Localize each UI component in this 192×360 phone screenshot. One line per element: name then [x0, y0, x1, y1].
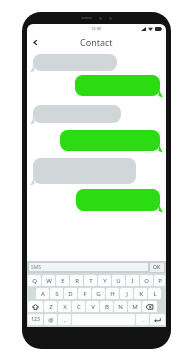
- button[interactable]: Sent message: [76, 189, 163, 211]
- button[interactable]: Received message: [30, 105, 121, 123]
- button[interactable]: D: [64, 288, 77, 299]
- button[interactable]: ,: [58, 314, 71, 325]
- staticText: SMS: [31, 264, 42, 271]
- button[interactable]: E: [56, 275, 69, 286]
- button[interactable]: .: [136, 314, 149, 325]
- button[interactable]: L: [148, 288, 161, 299]
- button[interactable]: P: [154, 275, 165, 286]
- button[interactable]: S: [50, 288, 63, 299]
- staticText: L: [153, 290, 157, 298]
- button[interactable]: OK: [150, 263, 164, 272]
- staticText: O: [144, 277, 149, 285]
- button[interactable]: U: [112, 275, 125, 286]
- button[interactable]: SMS: [29, 263, 148, 271]
- button[interactable]: O: [140, 275, 153, 286]
- button[interactable]: 123: [28, 314, 43, 325]
- staticText: C: [77, 303, 81, 311]
- button[interactable]: Received message: [30, 54, 117, 71]
- staticText: T: [89, 277, 93, 285]
- staticText: U: [116, 277, 121, 285]
- staticText: K: [139, 290, 143, 298]
- staticText: P: [158, 277, 162, 285]
- staticText: S: [55, 290, 59, 298]
- staticText: V: [91, 303, 95, 311]
- button[interactable]: X: [58, 301, 71, 312]
- staticText: .: [142, 316, 144, 324]
- staticText: Q: [32, 277, 37, 285]
- staticText: F: [83, 290, 87, 298]
- button[interactable]: T: [84, 275, 97, 286]
- staticText: G: [96, 290, 101, 298]
- staticText: R: [75, 277, 79, 285]
- button[interactable]: W: [42, 275, 55, 286]
- button[interactable]: A: [36, 288, 49, 299]
- staticText: E: [61, 277, 65, 285]
- staticText: M: [132, 303, 138, 311]
- staticText: X: [63, 303, 67, 311]
- staticText: Contact: [80, 36, 113, 48]
- button[interactable]: Sent message: [75, 75, 163, 96]
- staticText: Y: [103, 277, 107, 285]
- staticText: N: [118, 303, 123, 311]
- button[interactable]: I: [126, 275, 139, 286]
- staticText: H: [110, 290, 115, 298]
- staticText: B: [105, 303, 109, 311]
- button[interactable]: J: [120, 288, 133, 299]
- button[interactable]: @: [44, 314, 57, 325]
- staticText: W: [46, 277, 52, 285]
- staticText: ,: [64, 316, 66, 324]
- button[interactable]: Backspace: [142, 301, 157, 312]
- button[interactable]: Enter: [150, 314, 165, 325]
- button[interactable]: R: [70, 275, 83, 286]
- button[interactable]: C: [72, 301, 85, 312]
- button[interactable]: Shift: [28, 301, 43, 312]
- staticText: Z: [49, 303, 53, 311]
- button[interactable]: G: [92, 288, 105, 299]
- button[interactable]: Back: [27, 34, 43, 50]
- button[interactable]: Q: [28, 275, 41, 286]
- staticText: 123: [31, 316, 40, 323]
- button[interactable]: B: [100, 301, 113, 312]
- button[interactable]: Sent message: [60, 130, 163, 151]
- button[interactable]: N: [114, 301, 127, 312]
- staticText: 12:00: [91, 26, 102, 31]
- staticText: I: [131, 277, 134, 285]
- staticText: J: [126, 290, 128, 298]
- staticText: OK: [153, 264, 161, 271]
- staticText: A: [41, 290, 45, 298]
- button[interactable]: M: [128, 301, 141, 312]
- staticText: D: [68, 290, 73, 298]
- button[interactable]: H: [106, 288, 119, 299]
- staticText: @: [48, 316, 54, 324]
- button[interactable]: F: [78, 288, 91, 299]
- button[interactable]: V: [86, 301, 99, 312]
- button[interactable]: Z: [44, 301, 57, 312]
- button[interactable]: Y: [98, 275, 111, 286]
- button[interactable]: Received message: [30, 158, 136, 184]
- button[interactable]: K: [134, 288, 147, 299]
